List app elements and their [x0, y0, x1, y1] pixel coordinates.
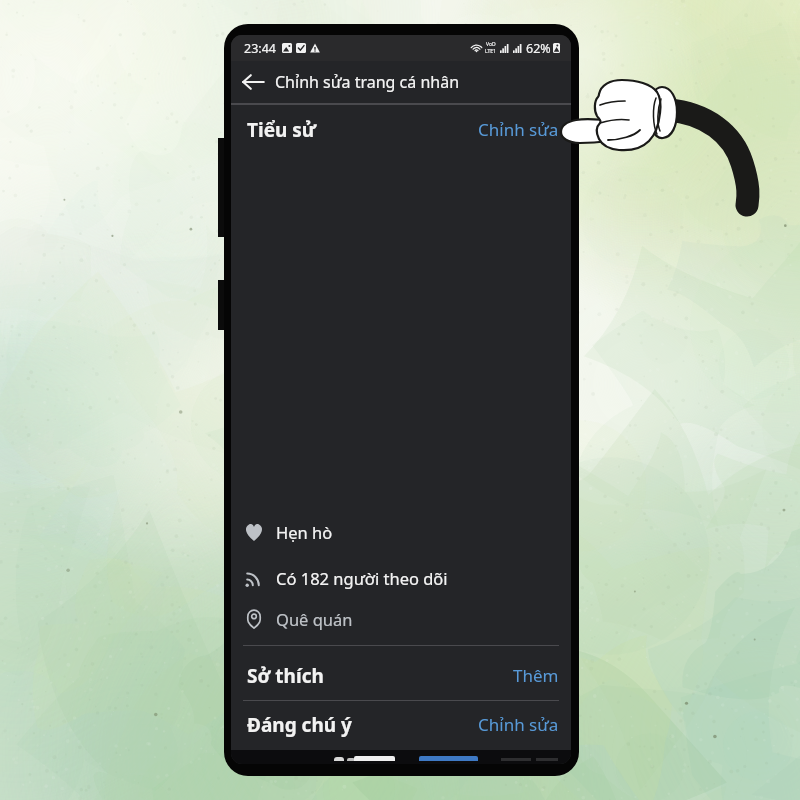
- button[interactable]: Quê quán: [231, 597, 571, 641]
- button[interactable]: Chỉnh sửa: [474, 110, 563, 149]
- staticText: Hẹn hò: [276, 521, 333, 543]
- staticText: Thêm: [513, 664, 559, 687]
- staticText: Đáng chú ý: [247, 712, 352, 738]
- staticText: Sở thích: [247, 663, 324, 689]
- staticText: Có 182 người theo dõi: [276, 567, 448, 589]
- button[interactable]: Thêm: [509, 656, 563, 695]
- staticText: Chỉnh sửa trang cá nhân: [275, 71, 460, 93]
- staticText: Tiểu sử: [247, 117, 317, 143]
- staticText: VoD: [486, 41, 496, 48]
- staticText: Chỉnh sửa: [478, 713, 559, 736]
- staticText: LTE1: [485, 48, 496, 55]
- button[interactable]: Có 182 người theo dõi: [231, 556, 571, 600]
- staticText: 62%: [526, 40, 551, 57]
- button[interactable]: Back: [237, 66, 269, 98]
- staticText: Chỉnh sửa: [478, 118, 559, 141]
- button[interactable]: Hẹn hò: [231, 510, 571, 554]
- staticText: 23:44: [244, 40, 276, 57]
- button[interactable]: Chỉnh sửa: [474, 705, 563, 744]
- staticText: Quê quán: [276, 608, 353, 630]
